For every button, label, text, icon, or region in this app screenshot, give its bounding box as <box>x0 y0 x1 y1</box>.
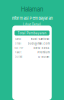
staticText: 12 Bulan <box>37 55 49 58</box>
staticText: No HP <box>14 46 23 50</box>
staticText: Premium <box>37 51 49 54</box>
staticText: Paket <box>14 51 21 54</box>
staticText: Durasi <box>14 55 22 58</box>
staticText: Lihat Detail <box>23 23 41 26</box>
button[interactable]: Total Pembayaran <box>14 30 49 35</box>
staticText: Budi Santoso <box>30 37 49 41</box>
staticText: budi@mail.com <box>27 42 49 45</box>
staticText: 0812 3456 <box>33 46 49 50</box>
staticText: Nama <box>14 37 20 41</box>
staticText: Total Pembayaran <box>17 31 46 35</box>
staticText: Informasi Pembayaran <box>11 16 52 21</box>
staticText: Halaman <box>21 6 43 13</box>
staticText: Email <box>14 42 21 45</box>
